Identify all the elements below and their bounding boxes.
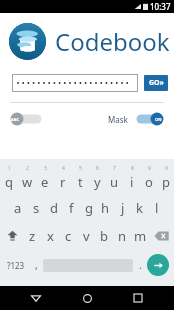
button[interactable]: Enter	[147, 254, 169, 276]
staticText: k	[136, 199, 143, 217]
staticText: p	[162, 173, 170, 191]
staticText: GO»	[149, 78, 164, 88]
staticText: l	[155, 199, 159, 217]
button[interactable]: h	[97, 195, 114, 220]
button[interactable]: 3	[36, 164, 54, 192]
staticText: b	[100, 227, 108, 245]
button[interactable]: ON	[134, 112, 164, 126]
staticText: g	[85, 199, 93, 217]
button[interactable]: 0	[157, 164, 174, 192]
staticText: u	[110, 173, 119, 191]
staticText: 0	[165, 165, 168, 172]
staticText: 6	[96, 165, 99, 172]
button[interactable]: j	[114, 195, 131, 220]
staticText: 8	[131, 165, 134, 172]
staticText: o	[145, 173, 153, 191]
button[interactable]: 5	[72, 164, 89, 192]
staticText: x	[47, 227, 54, 245]
staticText: z	[29, 227, 36, 245]
staticText: ?123	[7, 260, 25, 271]
button[interactable]: d	[45, 195, 63, 220]
button[interactable]: Recents	[123, 286, 153, 310]
staticText: t	[78, 173, 83, 191]
button[interactable]: v	[77, 223, 95, 248]
staticText: .	[139, 258, 142, 272]
button[interactable]: ABC	[10, 112, 44, 126]
staticText: y	[94, 173, 101, 191]
staticText: 3	[44, 165, 47, 172]
button[interactable]: Shift	[0, 223, 24, 248]
button[interactable]: GO»	[144, 75, 168, 91]
button[interactable]: f	[63, 195, 80, 220]
button[interactable]: Backspace	[149, 223, 174, 248]
staticText: n	[118, 227, 127, 245]
staticText: 5	[79, 165, 82, 172]
button[interactable]: m	[131, 223, 149, 248]
button[interactable]: a	[9, 195, 27, 220]
button[interactable]: 1	[0, 164, 18, 192]
staticText: v	[83, 227, 90, 245]
staticText: 9	[148, 165, 151, 172]
button[interactable]: 4	[54, 164, 72, 192]
staticText: Mask	[108, 114, 128, 125]
staticText: h	[101, 199, 110, 217]
staticText: Codebook	[55, 25, 170, 58]
staticText: m	[134, 227, 147, 245]
staticText: i	[130, 173, 134, 191]
staticText: e	[41, 173, 49, 191]
button[interactable]: .	[133, 252, 147, 278]
staticText: ON	[155, 117, 162, 122]
staticText: q	[5, 173, 13, 191]
button[interactable]: s	[27, 195, 45, 220]
staticText: w	[22, 173, 33, 191]
button[interactable]	[12, 74, 138, 92]
staticText: c	[65, 227, 72, 245]
button[interactable]: k	[131, 195, 148, 220]
staticText: 7	[113, 165, 116, 172]
button[interactable]: 2	[18, 164, 36, 192]
staticText: a	[14, 199, 22, 217]
staticText: d	[50, 199, 58, 217]
staticText: ABC	[11, 117, 19, 122]
button[interactable]: ,	[29, 252, 43, 278]
button[interactable]: Back	[21, 286, 51, 310]
button[interactable]: 6	[89, 164, 106, 192]
staticText: 2	[26, 165, 29, 172]
staticText: r	[60, 173, 66, 191]
button[interactable]: n	[113, 223, 131, 248]
button[interactable]: z	[24, 223, 41, 248]
staticText: j	[121, 199, 125, 217]
button[interactable]: 7	[106, 164, 123, 192]
button[interactable]: b	[95, 223, 113, 248]
staticText: ,	[35, 258, 38, 272]
button[interactable]: l	[148, 195, 165, 220]
button[interactable]: c	[59, 223, 77, 248]
staticText: 1	[8, 165, 11, 172]
button[interactable]: g	[80, 195, 97, 220]
staticText: 10:37	[150, 1, 171, 12]
button[interactable]: 8	[123, 164, 140, 192]
staticText: f	[69, 199, 74, 217]
staticText: 4	[62, 165, 65, 172]
button[interactable]: x	[41, 223, 59, 248]
button[interactable]: Home	[72, 286, 102, 310]
staticText: s	[33, 199, 40, 217]
button[interactable]: 9	[140, 164, 157, 192]
button[interactable]: ?123	[3, 252, 29, 278]
